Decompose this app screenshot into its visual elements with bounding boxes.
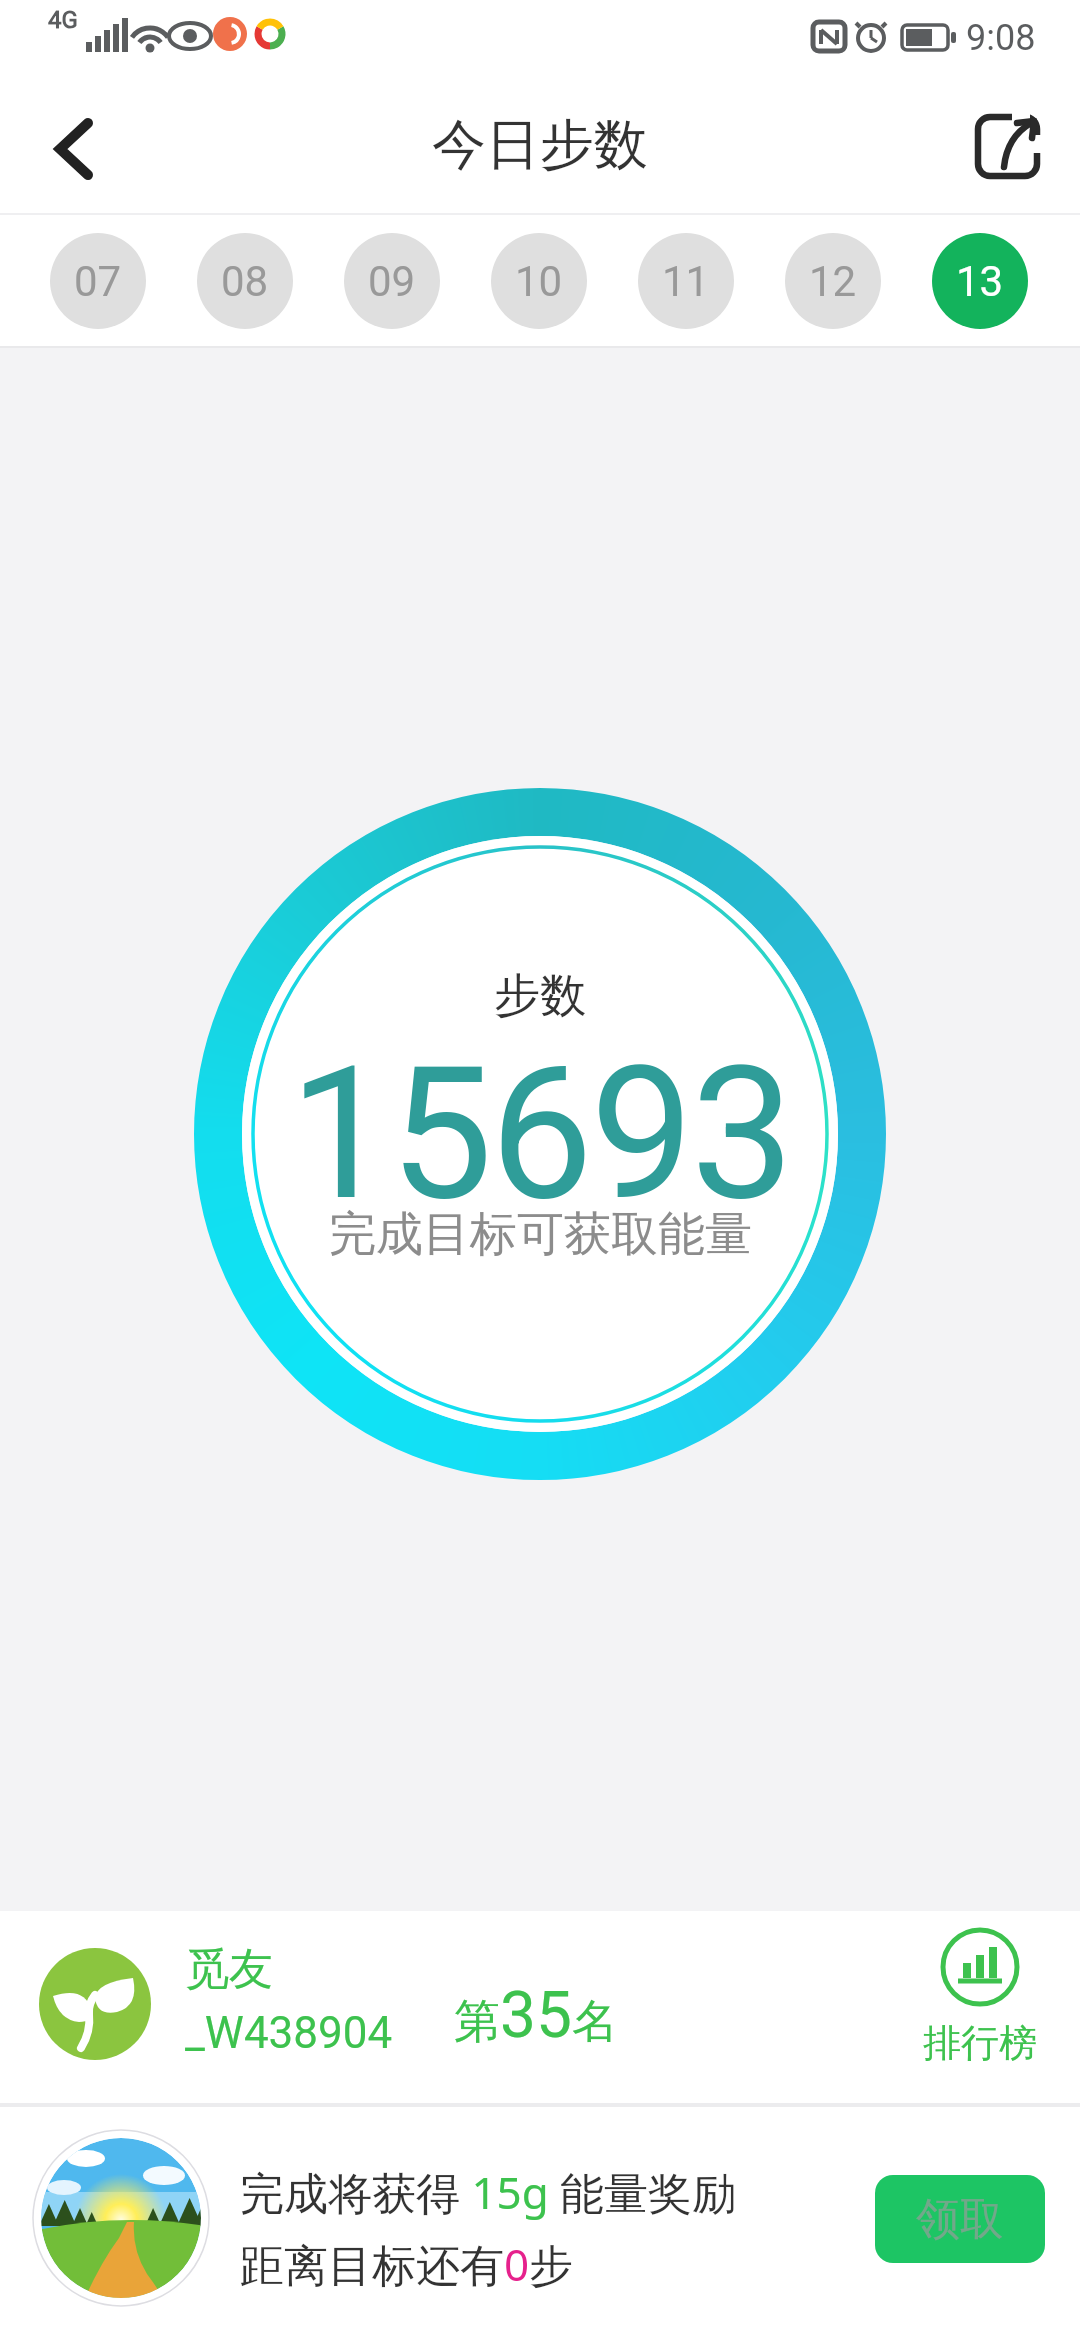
button[interactable]: 11	[638, 233, 734, 329]
button[interactable]: 12	[785, 233, 881, 329]
staticText: 完成将获得 15g 能量奖励	[240, 2162, 737, 2220]
staticText: 距离目标还有0步	[240, 2234, 574, 2292]
button[interactable]: 10	[491, 233, 587, 329]
staticText: 13	[956, 257, 1004, 306]
staticText: 完成目标可获取能量	[329, 1205, 752, 1264]
button[interactable]: 09	[344, 233, 440, 329]
staticText: 08	[221, 257, 269, 306]
staticText: 11	[662, 257, 710, 306]
button[interactable]: 08	[197, 233, 293, 329]
button[interactable]	[30, 97, 120, 197]
staticText: 10	[515, 257, 563, 306]
staticText: 第35名	[454, 1978, 618, 2053]
staticText: 07	[74, 257, 122, 306]
staticText: 今日步数	[432, 111, 648, 179]
staticText: _W438904	[185, 2007, 393, 2059]
staticText: 09	[368, 257, 416, 306]
button[interactable]: 排行榜	[905, 1921, 1055, 2096]
staticText: 15693	[289, 1026, 792, 1236]
button[interactable]: 07	[50, 233, 146, 329]
button[interactable]: 13	[932, 233, 1028, 329]
button[interactable]: 领取	[875, 2175, 1045, 2263]
staticText: 4G	[48, 6, 78, 34]
staticText: 觅友	[185, 1942, 273, 1997]
staticText: 领取	[916, 2192, 1004, 2247]
staticText: 12	[809, 257, 857, 306]
staticText: 步数	[494, 967, 586, 1025]
button[interactable]	[958, 97, 1058, 197]
staticText: 排行榜	[923, 2019, 1037, 2067]
staticText: 9:08	[966, 17, 1036, 59]
